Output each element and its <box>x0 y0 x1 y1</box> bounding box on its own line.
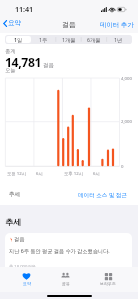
staticText: 추세 <box>5 217 21 227</box>
staticText: 오후 12시 <box>64 170 83 176</box>
staticText: 6개월 <box>87 36 101 43</box>
staticText: 11:41 <box>15 4 33 14</box>
staticText: 지난 6주 동안 평균 걸음 수가 감소했습니다. <box>9 247 110 254</box>
staticText: 1년 <box>114 36 123 43</box>
staticText: 공유 <box>62 281 70 286</box>
button[interactable]: 걸음 <box>5 233 132 272</box>
staticText: 걸음 <box>14 236 25 243</box>
staticText: 걸음 <box>43 62 55 69</box>
staticText: 오늘 <box>5 67 16 74</box>
staticText: 추세 <box>9 191 21 198</box>
staticText: 브라우즈 <box>100 281 116 286</box>
staticText: 데이터 소스 및 접근 <box>78 191 128 199</box>
button[interactable]: 요약 <box>14 267 39 281</box>
staticText: 1개월 <box>62 36 76 43</box>
staticText: 총 18,000걸음 <box>9 264 36 270</box>
button[interactable]: 1년 <box>106 36 131 43</box>
staticText: 2,000 <box>121 118 132 124</box>
staticText: 6시 <box>93 170 100 176</box>
button[interactable]: 1주 <box>31 36 56 43</box>
staticText: 0 <box>121 163 124 169</box>
staticText: 데이터 추가 <box>100 20 134 29</box>
button[interactable]: 추세 <box>5 185 132 204</box>
button[interactable]: 1개월 <box>56 36 81 43</box>
button[interactable]: 6개월 <box>81 36 106 43</box>
staticText: 1주 <box>39 36 48 43</box>
staticText: 요약 <box>8 19 22 27</box>
staticText: 14,781 <box>5 54 42 71</box>
staticText: 4,000 <box>121 75 132 81</box>
button[interactable]: 1일 <box>6 36 31 43</box>
staticText: 오전 12시 <box>7 170 26 176</box>
button[interactable]: 공유 <box>53 267 78 281</box>
button[interactable]: 요약 <box>1 18 27 28</box>
staticText: 6시 <box>36 170 43 176</box>
staticText: 요약 <box>23 281 31 286</box>
staticText: 걸음 <box>62 20 76 29</box>
staticText: 1일 <box>14 36 23 43</box>
button[interactable]: 데이터 추가 <box>98 19 136 30</box>
staticText: 총계 <box>5 48 16 55</box>
button[interactable]: 브라우즈 <box>92 267 124 281</box>
